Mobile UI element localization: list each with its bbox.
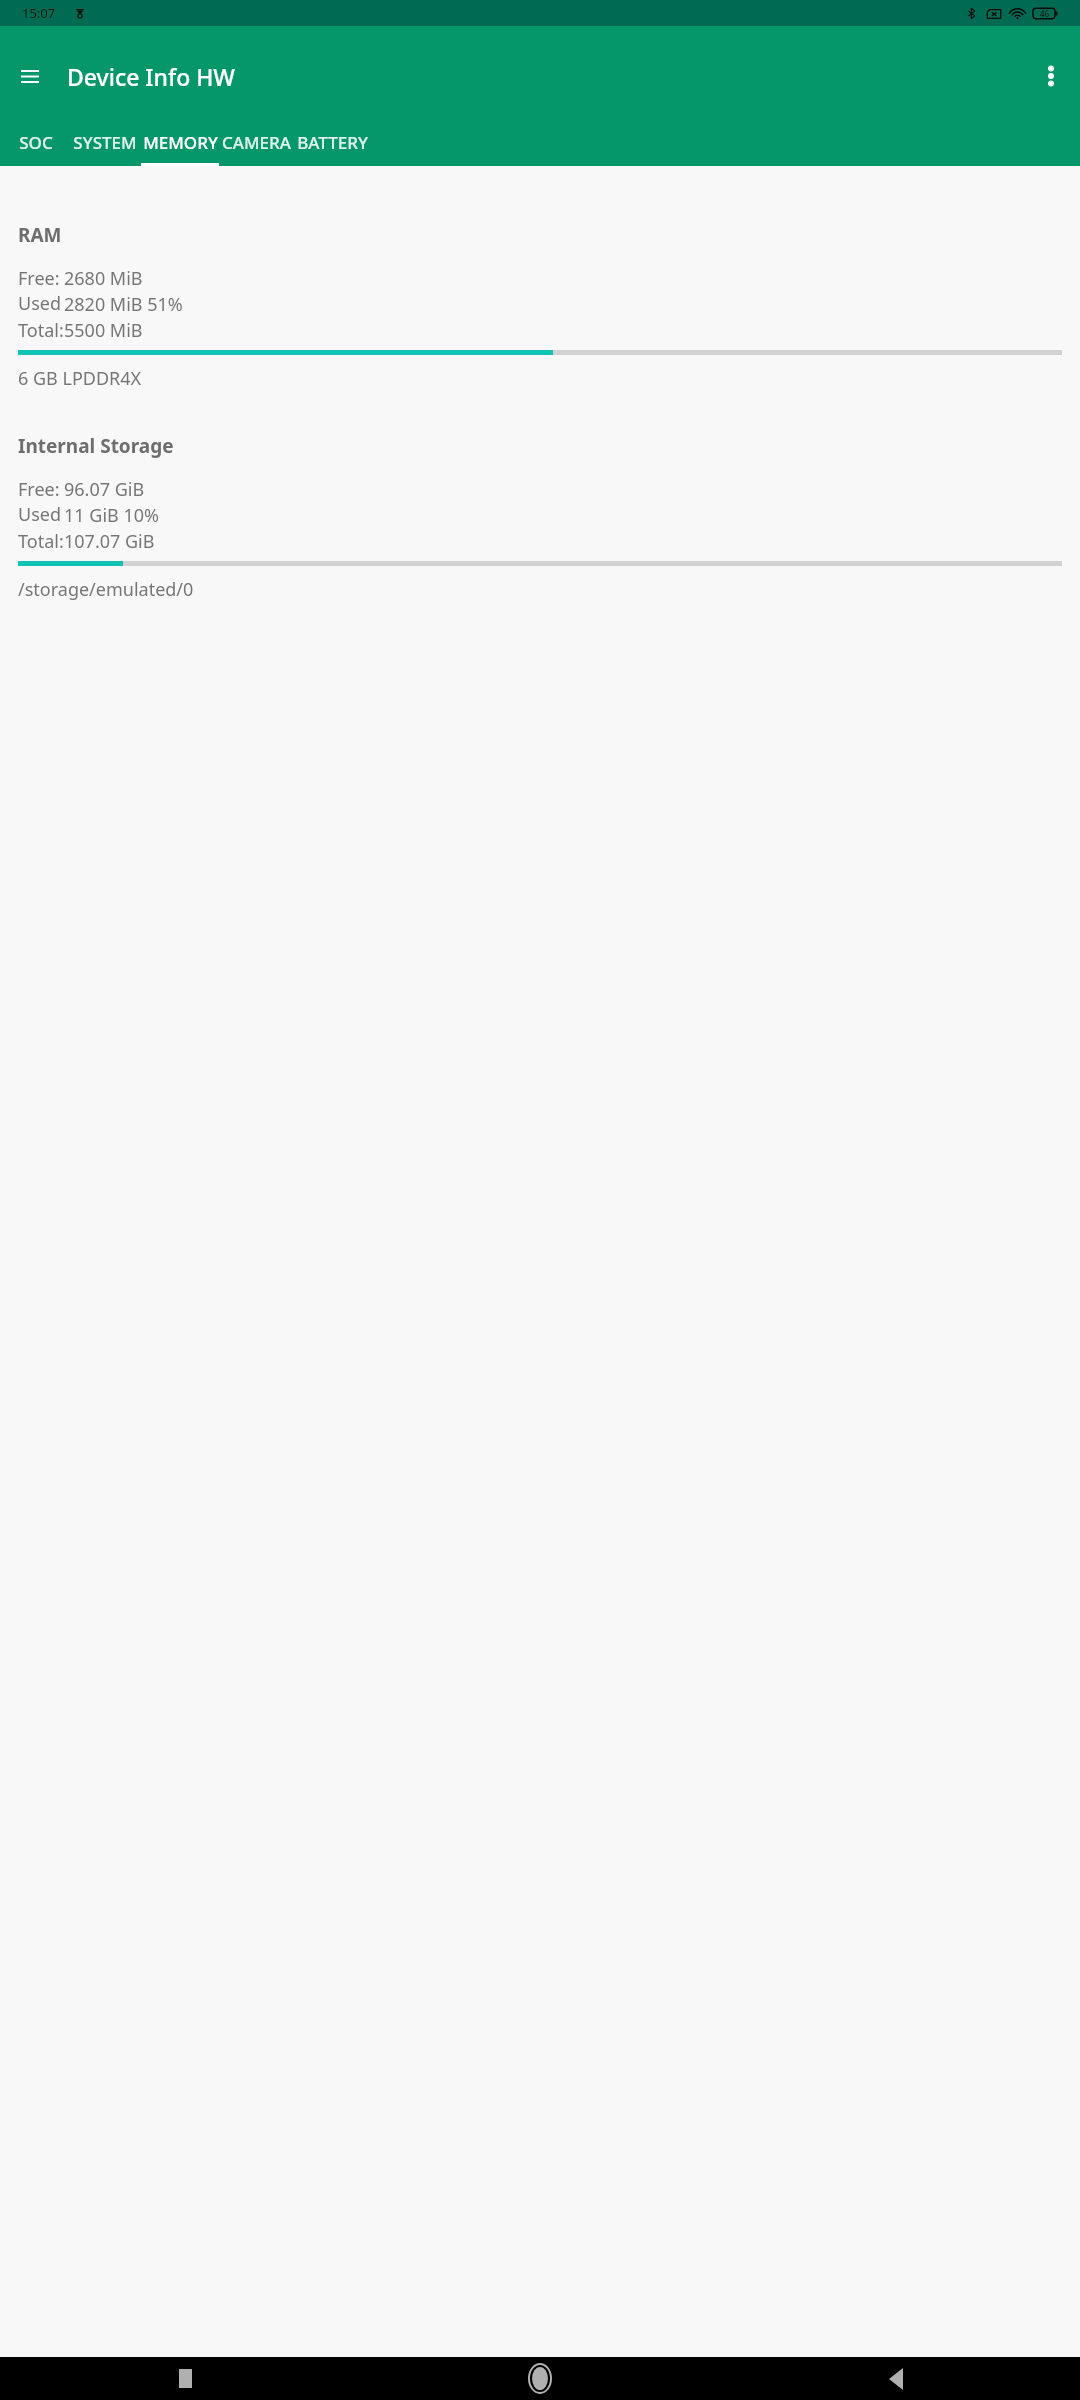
staticText: Free: <box>18 266 64 291</box>
staticText: 5500 MiB <box>64 318 143 343</box>
staticText: 46 <box>1040 8 1050 19</box>
button[interactable]: Recent apps <box>0 2357 360 2400</box>
staticText: Free: <box>18 477 64 502</box>
button[interactable]: MEMORY <box>130 126 230 166</box>
staticText: 96.07 GiB <box>64 477 145 502</box>
button[interactable]: SYSTEM <box>55 126 155 166</box>
staticText: 2680 MiB <box>64 266 143 291</box>
staticText: 15:07 <box>22 4 56 22</box>
staticText: BATTERY <box>297 131 368 154</box>
button[interactable]: More options <box>1027 52 1075 100</box>
button[interactable]: CAMERA <box>206 126 306 166</box>
button[interactable]: SOC <box>1 126 71 166</box>
staticText: CAMERA <box>222 131 291 154</box>
staticText: 107.07 GiB <box>64 529 155 554</box>
staticText: /storage/emulated/0 <box>18 577 194 602</box>
staticText: SYSTEM <box>73 131 137 154</box>
staticText: Total: <box>18 318 64 343</box>
staticText: Total: <box>18 529 64 554</box>
button[interactable]: Open navigation menu <box>6 52 54 100</box>
button[interactable]: BATTERY <box>282 126 382 166</box>
staticText: MEMORY <box>143 131 218 154</box>
staticText: Internal Storage <box>18 433 174 459</box>
staticText: Used: <box>18 291 64 317</box>
button[interactable]: Home <box>360 2357 720 2400</box>
staticText: 2820 MiB 51% <box>64 292 183 317</box>
button[interactable]: Back <box>720 2357 1080 2400</box>
staticText: 11 GiB 10% <box>64 503 159 528</box>
staticText: 6 GB LPDDR4X <box>18 366 142 391</box>
staticText: RAM <box>18 222 62 248</box>
staticText: Device Info HW <box>67 61 236 92</box>
staticText: Used: <box>18 502 64 528</box>
staticText: SOC <box>19 131 53 154</box>
